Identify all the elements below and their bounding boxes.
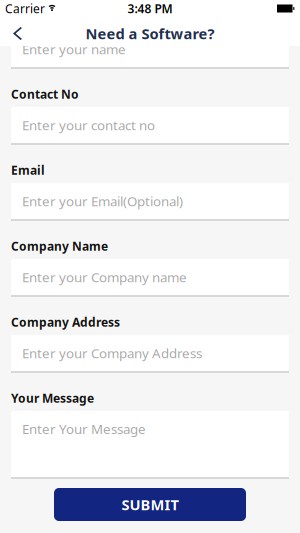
staticText: Company Name [11,238,108,254]
staticText: Contact No [11,86,79,102]
button[interactable]: Enter your Company name [11,259,289,297]
staticText: 3:48 PM [127,0,172,16]
button[interactable]: Enter your Company Address [11,335,289,373]
staticText: Enter your contact no [22,116,155,134]
staticText: Your Message [11,390,94,406]
staticText: Enter your Email(Optional) [22,192,183,210]
staticText: Email [11,162,45,178]
staticText: Company Address [11,314,120,330]
button[interactable]: SUBMIT [54,488,246,521]
button[interactable]: Back [0,22,31,44]
staticText: Enter your Company Address [22,344,202,362]
button[interactable]: Enter your contact no [11,107,289,145]
staticText: Need a Software? [85,24,214,43]
staticText: SUBMIT [121,495,178,514]
staticText: Enter your name [22,40,126,58]
staticText: Enter your Company name [22,268,187,286]
staticText: Enter Your Message [22,420,146,438]
staticText: Carrier [5,0,45,16]
button[interactable]: Enter your Email(Optional) [11,183,289,221]
button[interactable]: Enter Your Message [11,411,289,479]
button[interactable]: Enter your name [11,31,289,69]
